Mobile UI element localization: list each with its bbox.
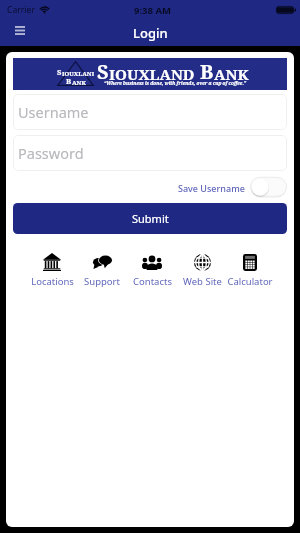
staticText: “Where business is done, with friends, o… bbox=[104, 80, 247, 86]
button[interactable]: Open navigation menu bbox=[6, 17, 34, 43]
staticText: Contacts bbox=[133, 275, 172, 288]
staticText: ANK bbox=[214, 64, 249, 85]
staticText: B bbox=[200, 58, 214, 85]
staticText: Web Site bbox=[183, 275, 222, 288]
button[interactable]: Contacts bbox=[127, 253, 177, 288]
staticText: 9:38 AM bbox=[134, 4, 171, 17]
staticText: Locations bbox=[31, 275, 74, 288]
button[interactable]: Web Site bbox=[177, 253, 227, 288]
staticText: Carrier bbox=[7, 4, 35, 16]
staticText: IOUXLAND bbox=[109, 64, 195, 85]
staticText: S bbox=[57, 67, 62, 77]
staticText: IOUXLAND bbox=[62, 69, 94, 77]
button[interactable]: Password bbox=[13, 135, 287, 171]
button[interactable]: Save Username toggle, off bbox=[250, 177, 287, 198]
staticText: Login bbox=[133, 24, 168, 42]
button[interactable]: Support bbox=[77, 253, 127, 288]
button[interactable]: Username bbox=[13, 94, 287, 130]
staticText: Submit bbox=[132, 211, 169, 226]
staticText: Support bbox=[84, 275, 120, 288]
staticText: Password bbox=[18, 143, 84, 163]
staticText: Username bbox=[18, 102, 89, 122]
button[interactable]: Calculator bbox=[227, 253, 273, 288]
staticText: ANK bbox=[72, 78, 86, 86]
staticText: Calculator bbox=[227, 275, 273, 288]
button[interactable]: Locations bbox=[27, 253, 77, 288]
staticText: Save Username bbox=[178, 182, 245, 194]
staticText: S bbox=[97, 58, 109, 85]
button[interactable]: Submit bbox=[13, 203, 287, 234]
staticText: B bbox=[66, 76, 72, 86]
